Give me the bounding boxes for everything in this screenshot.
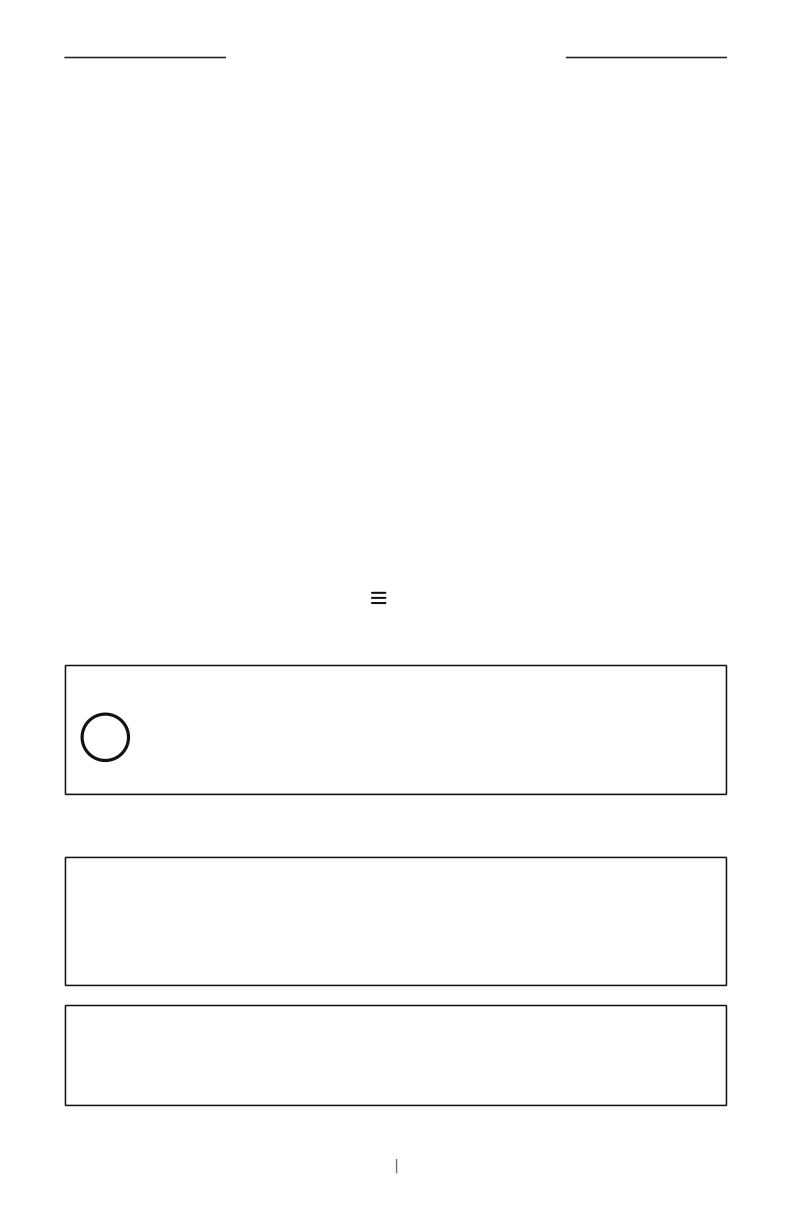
button[interactable]: Card two xyxy=(65,857,726,985)
button[interactable]: Profile card xyxy=(65,665,726,794)
button[interactable]: Menu xyxy=(371,592,386,604)
button[interactable]: Card three xyxy=(65,1005,726,1105)
